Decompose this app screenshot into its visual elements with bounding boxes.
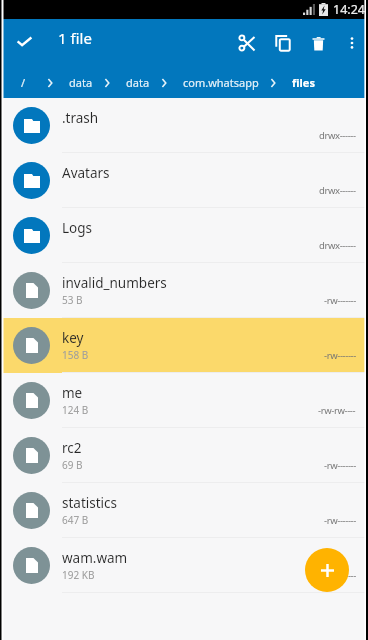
staticText: drwx------: [319, 239, 356, 252]
button[interactable]: invalid_numbers: [0, 263, 368, 318]
button[interactable]: me: [0, 373, 368, 428]
staticText: -rw-------: [324, 459, 356, 472]
staticText: 14:24: [333, 1, 365, 18]
staticText: 647 B: [62, 513, 89, 527]
staticText: -rw-------: [324, 514, 356, 527]
staticText: files: [292, 75, 315, 90]
button[interactable]: Logs: [0, 208, 368, 263]
staticText: statistics: [62, 494, 118, 512]
button[interactable]: key: [0, 318, 368, 373]
button[interactable]: .trash: [0, 98, 368, 153]
button[interactable]: Copy: [265, 19, 301, 67]
staticText: invalid_numbers: [62, 274, 167, 292]
button[interactable]: Cut: [229, 19, 265, 67]
staticText: Logs: [62, 219, 93, 237]
button[interactable]: Avatars: [0, 153, 368, 208]
button[interactable]: com.whatsapp: [183, 75, 259, 90]
staticText: .trash: [62, 109, 99, 127]
staticText: 69 B: [62, 458, 83, 472]
button[interactable]: Done: [0, 19, 48, 67]
staticText: key: [62, 329, 84, 347]
staticText: 158 B: [62, 348, 89, 362]
staticText: 53 B: [62, 293, 83, 307]
staticText: data: [126, 75, 150, 90]
staticText: Avatars: [62, 164, 110, 182]
button[interactable]: wam.wam: [0, 538, 368, 593]
staticText: me: [62, 384, 83, 402]
staticText: data: [69, 75, 93, 90]
button[interactable]: More options: [335, 19, 368, 67]
button[interactable]: data: [69, 75, 93, 90]
staticText: drwx------: [319, 129, 356, 142]
button[interactable]: Delete: [301, 19, 335, 67]
button[interactable]: statistics: [0, 483, 368, 538]
staticText: /: [21, 75, 26, 90]
staticText: com.whatsapp: [183, 75, 259, 90]
staticText: 192 KB: [62, 568, 95, 582]
staticText: -rw-rw----: [318, 404, 356, 417]
button[interactable]: Add: [305, 548, 349, 592]
button[interactable]: files: [292, 75, 315, 90]
staticText: wam.wam: [62, 549, 128, 567]
staticText: -rw-------: [324, 569, 356, 582]
staticText: 1 file: [58, 28, 92, 48]
staticText: drwx------: [319, 184, 356, 197]
staticText: -rw-------: [324, 294, 356, 307]
staticText: 124 B: [62, 403, 89, 417]
button[interactable]: data: [126, 75, 150, 90]
button[interactable]: /: [21, 75, 26, 90]
staticText: -rw-------: [324, 349, 356, 362]
staticText: rc2: [62, 439, 82, 457]
button[interactable]: rc2: [0, 428, 368, 483]
